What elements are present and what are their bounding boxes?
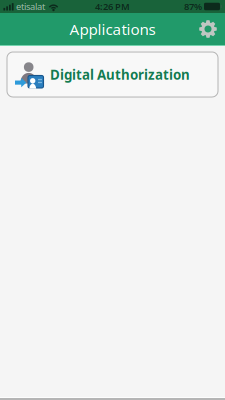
staticText: 4:26 PM [95,0,130,13]
button[interactable]: Digital Authorization [7,52,218,97]
button[interactable]: Settings [191,13,225,45]
staticText: etisalat [16,0,45,13]
staticText: 87% [184,0,202,13]
staticText: Digital Authorization [50,66,190,83]
staticText: Applications [69,19,155,39]
